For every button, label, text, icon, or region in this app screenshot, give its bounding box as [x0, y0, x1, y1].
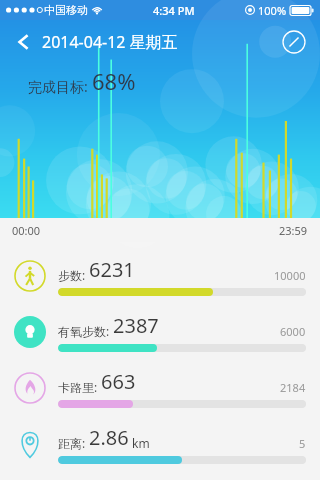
staticText: 中国移动: [44, 3, 88, 17]
button[interactable]: 卡路里:: [0, 360, 320, 416]
button[interactable]: 距离:: [0, 416, 320, 472]
staticText: km: [129, 435, 150, 451]
staticText: 23:59: [279, 223, 308, 238]
staticText: 2387: [113, 312, 159, 339]
staticText: 4:34 PM: [153, 3, 195, 18]
staticText: 2.86: [89, 424, 129, 451]
button[interactable]: 步数:: [0, 248, 320, 304]
staticText: 663: [101, 368, 136, 395]
staticText: 2184: [280, 380, 306, 395]
staticText: 卡路里:: [58, 379, 101, 395]
button[interactable]: 有氧步数:: [0, 304, 320, 360]
button[interactable]: Back: [8, 26, 40, 58]
staticText: 6231: [89, 256, 135, 283]
staticText: 5: [299, 436, 306, 451]
staticText: 距离:: [58, 435, 89, 451]
staticText: 6000: [280, 324, 306, 339]
button[interactable]: Edit: [280, 28, 308, 56]
staticText: 00:00: [12, 223, 41, 238]
staticText: 100%: [258, 3, 287, 18]
staticText: 有氧步数:: [58, 323, 113, 339]
staticText: 2014-04-12 星期五: [42, 31, 178, 53]
staticText: 步数:: [58, 267, 89, 283]
staticText: 完成目标:: [28, 77, 92, 96]
staticText: 10000: [274, 268, 306, 283]
staticText: 68%: [92, 66, 136, 96]
